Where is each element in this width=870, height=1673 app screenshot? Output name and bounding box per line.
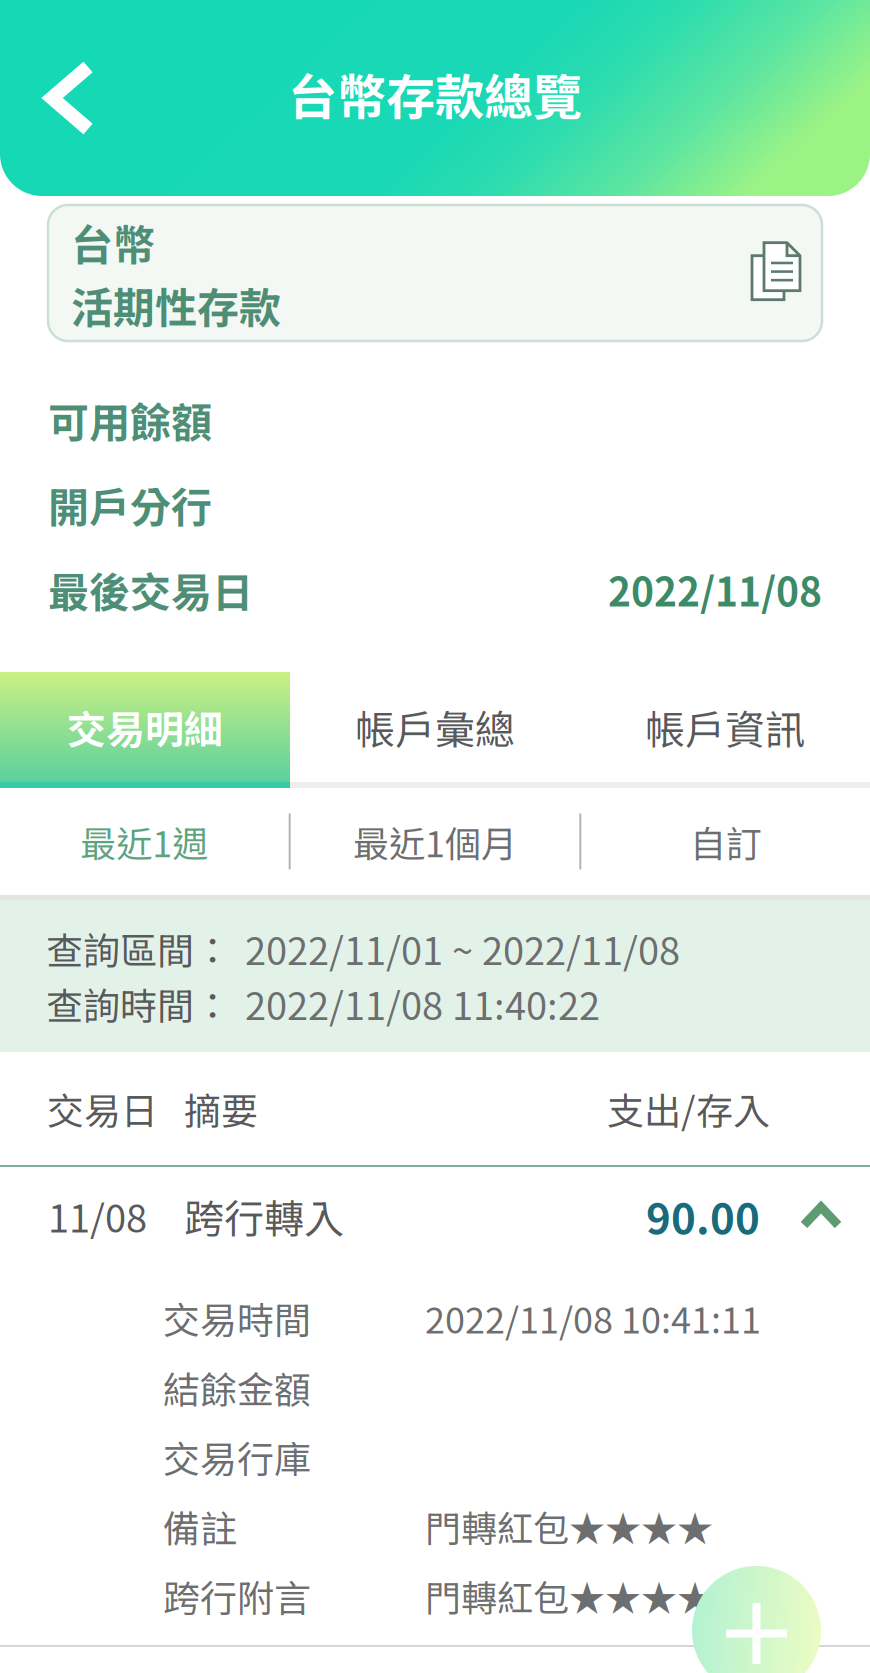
staticText: 備註 <box>163 1499 237 1553</box>
staticText: 最後交易日 <box>48 560 253 619</box>
staticText: 帳戶資訊 <box>645 698 805 756</box>
button[interactable]: 交易明細 <box>0 672 290 782</box>
staticText: 查詢時間： <box>46 977 231 1030</box>
staticText: 最近1個月 <box>353 815 517 867</box>
staticText: 台幣存款總覽 <box>288 58 582 129</box>
staticText: 跨行轉入 <box>184 1187 344 1245</box>
staticText: 交易明細 <box>67 699 223 755</box>
staticText: 交易時間 <box>163 1291 311 1345</box>
staticText: 交易行庫 <box>163 1430 311 1484</box>
staticText: 2022/11/08 11:40:22 <box>245 976 600 1031</box>
button[interactable]: 最近1週 <box>0 788 289 895</box>
staticText: 帳戶彙總 <box>355 698 515 756</box>
staticText: 查詢區間： <box>46 922 231 975</box>
button[interactable]: 11/08 <box>0 1167 870 1265</box>
staticText: 門轉紅包★★★★ <box>425 1500 713 1552</box>
staticText: 2022/11/08 <box>608 561 822 618</box>
button[interactable]: 帳戶資訊 <box>580 672 870 782</box>
staticText: 結餘金額 <box>163 1360 311 1414</box>
staticText: 自訂 <box>690 815 762 867</box>
staticText: 交易日 <box>47 1082 158 1135</box>
button[interactable]: Back <box>0 37 128 159</box>
staticText: 11/08 <box>48 1188 147 1243</box>
button[interactable]: 台幣 <box>0 196 870 341</box>
staticText: 90.00 <box>646 1186 760 1246</box>
staticText: 最近1週 <box>80 815 208 867</box>
staticText: 2022/11/08 10:41:11 <box>425 1292 761 1344</box>
button[interactable]: 最近1個月 <box>291 788 579 895</box>
staticText: 門轉紅包★★★★ <box>425 1570 713 1622</box>
staticText: 支出/存入 <box>607 1082 770 1135</box>
staticText: 跨行附言 <box>163 1569 311 1623</box>
staticText: 摘要 <box>184 1082 258 1135</box>
button[interactable]: 帳戶彙總 <box>290 672 580 782</box>
button[interactable]: 自訂 <box>581 788 870 895</box>
button[interactable]: Add <box>692 1566 821 1673</box>
staticText: 台幣 <box>71 212 155 272</box>
staticText: 開戶分行 <box>48 475 212 534</box>
staticText: 活期性存款 <box>71 274 281 335</box>
staticText: 可用餘額 <box>48 390 212 449</box>
staticText: 2022/11/01 ~ 2022/11/08 <box>245 921 680 976</box>
